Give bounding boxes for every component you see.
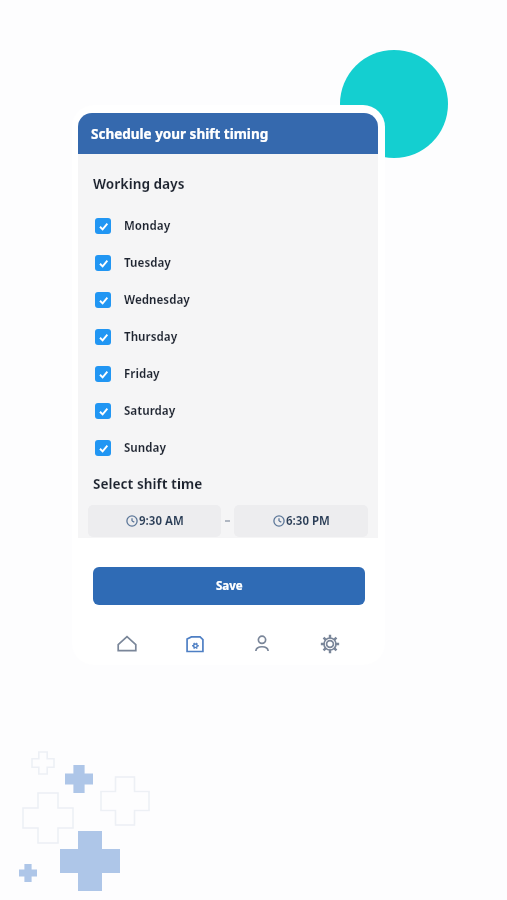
button[interactable]: Monday: [78, 207, 378, 244]
button[interactable]: Save: [93, 567, 365, 605]
staticText: Saturday: [124, 403, 176, 419]
staticText: Select shift time: [93, 475, 203, 493]
staticText: Monday: [124, 218, 171, 234]
button[interactable]: Thursday: [78, 318, 378, 355]
button[interactable]: Shifts: [175, 624, 215, 664]
button[interactable]: 6:30 PM: [234, 505, 368, 537]
button[interactable]: Friday: [78, 355, 378, 392]
staticText: Sunday: [124, 440, 167, 456]
button[interactable]: Saturday: [78, 392, 378, 429]
button[interactable]: Sunday: [78, 429, 378, 466]
staticText: Friday: [124, 366, 160, 382]
staticText: 9:30 AM: [139, 513, 184, 529]
staticText: Schedule your shift timing: [91, 125, 269, 143]
staticText: Wednesday: [124, 292, 190, 308]
button[interactable]: Schedule your shift timing: [78, 113, 378, 154]
staticText: Thursday: [124, 329, 178, 345]
staticText: Save: [216, 578, 243, 594]
button[interactable]: 9:30 AM: [88, 505, 221, 537]
button[interactable]: Tuesday: [78, 244, 378, 281]
staticText: Working days: [93, 175, 185, 193]
button[interactable]: Profile: [242, 624, 282, 664]
button[interactable]: Wednesday: [78, 281, 378, 318]
button[interactable]: Settings: [310, 624, 350, 664]
staticText: 6:30 PM: [286, 513, 330, 529]
staticText: Tuesday: [124, 255, 171, 271]
button[interactable]: Home: [107, 624, 147, 664]
